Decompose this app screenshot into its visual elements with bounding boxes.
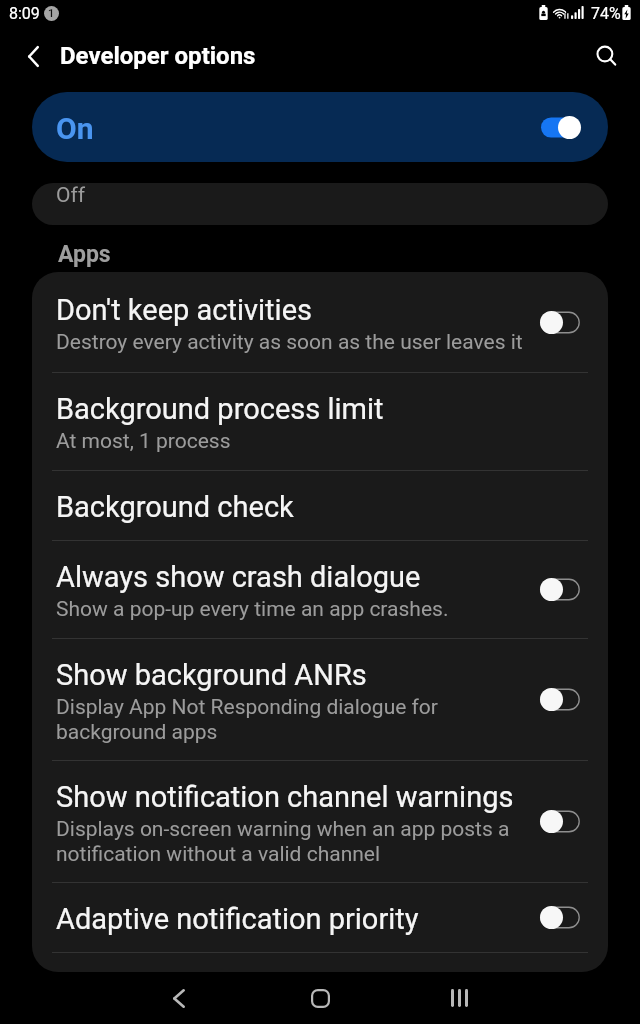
staticText: Developer options xyxy=(60,42,256,70)
staticText: Off xyxy=(56,183,86,208)
staticText: Background check xyxy=(56,488,294,524)
staticText: Background process limit xyxy=(56,390,384,426)
staticText: Show notification channel warnings xyxy=(56,778,514,814)
button[interactable]: On xyxy=(32,92,608,162)
button[interactable]: Off xyxy=(32,183,608,225)
staticText: At most, 1 process xyxy=(56,428,556,453)
staticText: Show background ANRs xyxy=(56,656,367,692)
button[interactable]: Always show crash dialogue xyxy=(32,541,608,638)
button[interactable]: Background check xyxy=(32,471,608,540)
button[interactable]: Adaptive notification priority xyxy=(32,883,608,952)
button[interactable]: Back xyxy=(155,974,203,1022)
staticText: Displays on-screen warning when an app p… xyxy=(56,816,516,866)
button[interactable]: Show background ANRs xyxy=(32,639,608,760)
staticText: 1 xyxy=(48,7,55,20)
staticText: On xyxy=(56,111,94,146)
button[interactable]: Search xyxy=(585,34,629,78)
button[interactable]: Navigate up xyxy=(9,32,57,80)
button[interactable]: Home xyxy=(296,974,344,1022)
button[interactable]: Don't keep activities xyxy=(32,272,608,372)
staticText: Display App Not Responding dialogue for … xyxy=(56,694,456,744)
button[interactable]: Show notification channel warnings xyxy=(32,761,608,882)
staticText: Destroy every activity as soon as the us… xyxy=(56,329,556,354)
staticText: Show a pop-up every time an app crashes. xyxy=(56,596,556,621)
staticText: Don't keep activities xyxy=(56,291,312,327)
staticText: Always show crash dialogue xyxy=(56,558,421,594)
button[interactable]: Recent apps xyxy=(435,974,483,1022)
button[interactable]: Background process limit xyxy=(32,373,608,470)
staticText: Apps xyxy=(58,241,111,268)
staticText: 74% xyxy=(591,4,621,23)
staticText: 8:09 xyxy=(9,4,40,23)
staticText: Adaptive notification priority xyxy=(56,900,419,936)
